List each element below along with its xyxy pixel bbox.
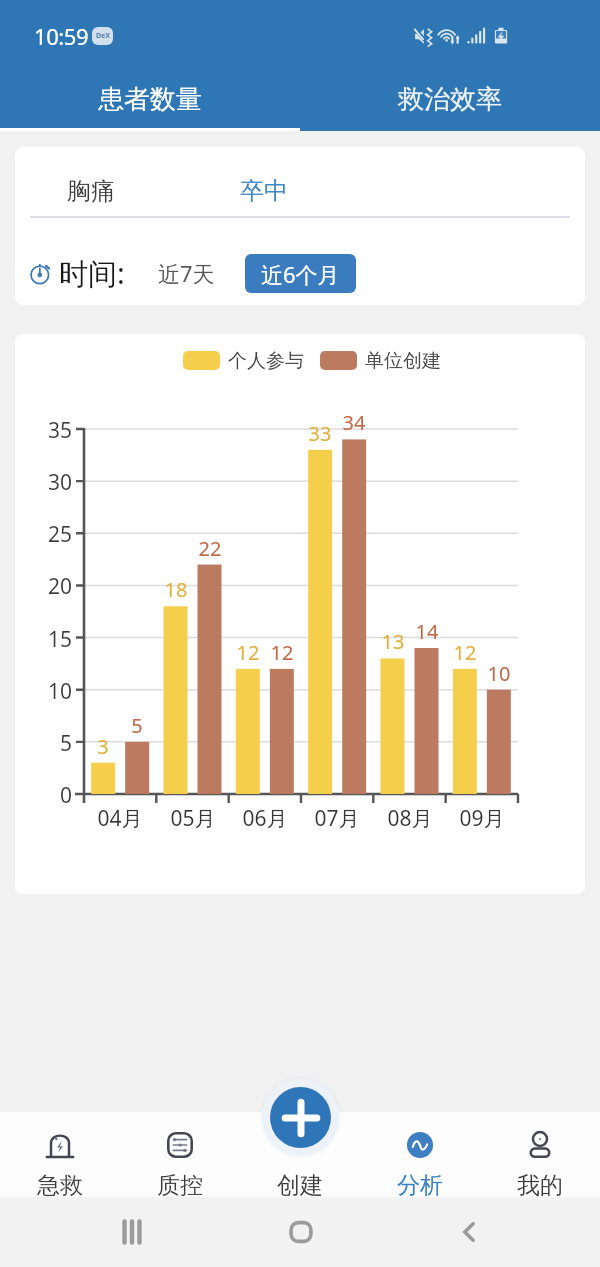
button[interactable]: 我的 (480, 1112, 600, 1197)
button[interactable]: 患者数量 (0, 62, 300, 131)
staticText: 个人参与 (228, 349, 304, 371)
button[interactable]: 创建 (270, 1087, 331, 1148)
staticText: 14 (397, 618, 457, 645)
staticText: 13 (363, 628, 423, 655)
button[interactable]: 近6个月 (245, 254, 356, 293)
staticText: 04月 (80, 804, 160, 833)
staticText: 患者数量 (98, 83, 202, 116)
button[interactable]: Back (446, 1215, 491, 1249)
button[interactable]: 创建 (240, 1112, 360, 1197)
staticText: 08月 (370, 804, 450, 833)
button[interactable]: Home (278, 1215, 323, 1249)
staticText: 15 (32, 625, 72, 654)
staticText: 我的 (517, 1171, 563, 1197)
button[interactable]: 卒中 (211, 147, 317, 217)
staticText: 10:59 (34, 21, 89, 51)
staticText: 急救 (37, 1171, 83, 1197)
staticText: 单位创建 (365, 349, 441, 371)
staticText: 5 (32, 729, 72, 758)
staticText: 22 (180, 535, 240, 562)
staticText: 救治效率 (398, 83, 502, 116)
staticText: 33 (290, 420, 350, 447)
staticText: 近6个月 (261, 259, 340, 289)
button[interactable]: 救治效率 (300, 62, 600, 131)
button[interactable]: 近7天 (152, 250, 221, 296)
staticText: 12 (435, 639, 495, 666)
staticText: 35 (32, 416, 72, 445)
staticText: 10 (469, 660, 529, 687)
button[interactable]: 急救 (0, 1112, 120, 1197)
button[interactable]: 质控 (120, 1112, 240, 1197)
staticText: 0 (32, 781, 72, 810)
staticText: 5 (107, 712, 167, 739)
staticText: 12 (218, 639, 278, 666)
button[interactable]: Recent apps (109, 1217, 154, 1247)
staticText: 05月 (153, 804, 233, 833)
staticText: 30 (32, 468, 72, 497)
staticText: 12 (252, 639, 312, 666)
staticText: 25 (32, 520, 72, 549)
staticText: DeX (96, 31, 110, 41)
staticText: 20 (32, 572, 72, 601)
staticText: 卒中 (240, 176, 288, 206)
staticText: 10 (32, 677, 72, 706)
staticText: 近7天 (158, 258, 215, 288)
staticText: 质控 (157, 1171, 203, 1197)
staticText: 34 (324, 409, 384, 436)
button[interactable]: 胸痛 (38, 147, 144, 217)
button[interactable]: 分析 (360, 1112, 480, 1197)
staticText: 时间: (59, 253, 125, 293)
staticText: 创建 (277, 1171, 323, 1197)
staticText: 胸痛 (67, 176, 115, 206)
staticText: 18 (146, 576, 206, 603)
staticText: 09月 (442, 804, 522, 833)
staticText: 分析 (397, 1171, 443, 1197)
staticText: 3 (73, 733, 133, 760)
staticText: 07月 (297, 804, 377, 833)
staticText: 06月 (225, 804, 305, 833)
